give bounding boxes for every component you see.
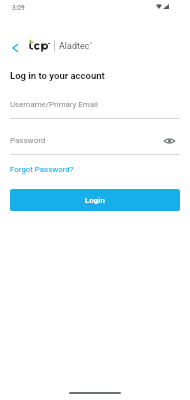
staticText: Login — [85, 196, 105, 205]
staticText: Username/Primary Email — [10, 100, 98, 109]
button[interactable]: Show password — [161, 134, 177, 148]
button[interactable]: Back — [6, 39, 24, 57]
button[interactable]: Forgot Password? — [10, 165, 74, 174]
staticText: 3:09 — [12, 4, 25, 12]
staticText: Password — [10, 136, 46, 145]
button[interactable]: Login — [10, 189, 180, 211]
staticText: Aladtec — [59, 41, 90, 52]
staticText: Forgot Password? — [10, 165, 74, 174]
staticText: Log in to your account — [10, 70, 105, 81]
